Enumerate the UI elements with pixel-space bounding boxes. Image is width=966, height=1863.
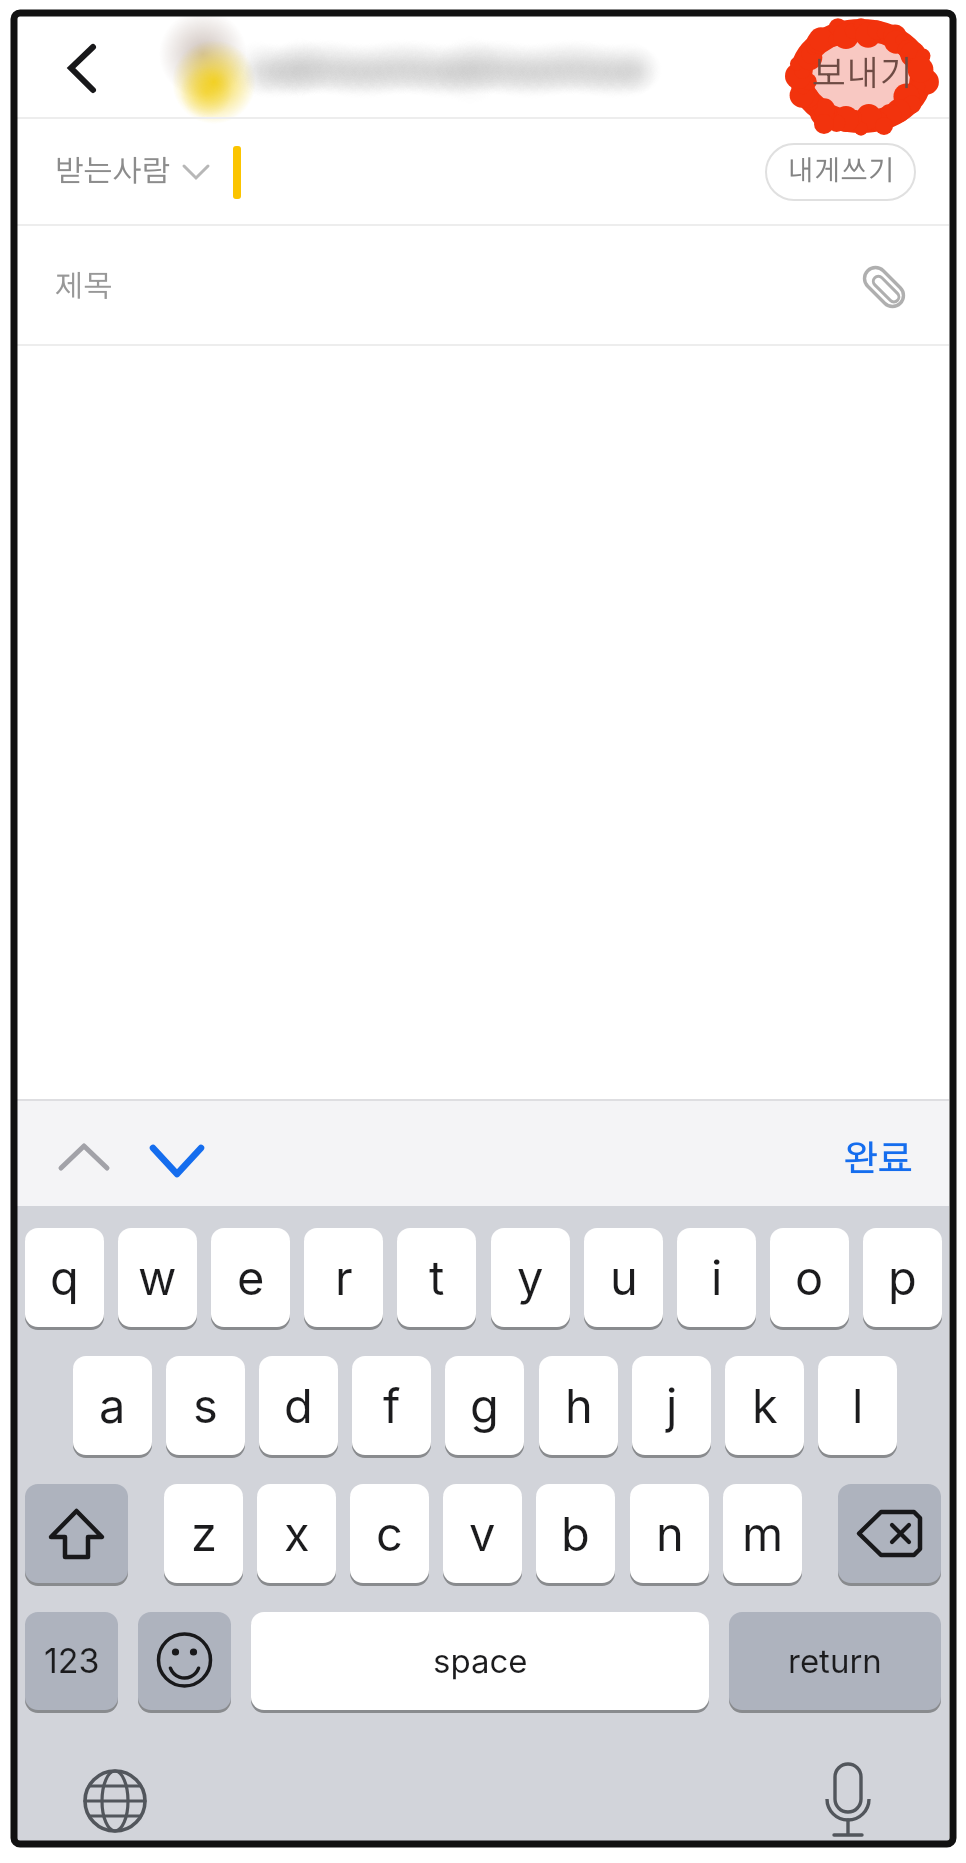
button[interactable]: v (443, 1484, 522, 1586)
button[interactable] (838, 1484, 941, 1586)
button[interactable]: o (770, 1228, 849, 1330)
staticText: n (656, 1505, 684, 1562)
button[interactable]: y (491, 1228, 570, 1330)
button[interactable]: h (539, 1356, 618, 1458)
button[interactable] (855, 258, 915, 318)
staticText: 받는사람 (55, 157, 171, 187)
button[interactable]: d (259, 1356, 338, 1458)
staticText: j (666, 1377, 678, 1434)
button[interactable]: s (166, 1356, 245, 1458)
button[interactable]: t (397, 1228, 476, 1330)
button[interactable]: j (632, 1356, 711, 1458)
staticText: 완료 (843, 1142, 914, 1178)
staticText: i (711, 1249, 723, 1306)
button[interactable]: 123 (25, 1612, 118, 1713)
staticText: l (852, 1377, 864, 1434)
button[interactable] (82, 1768, 148, 1834)
button[interactable]: space (251, 1612, 709, 1713)
button[interactable] (50, 35, 114, 101)
staticText: e (237, 1249, 265, 1306)
button[interactable] (140, 1132, 212, 1188)
button[interactable]: c (350, 1484, 429, 1586)
button[interactable]: r (304, 1228, 383, 1330)
button[interactable]: m (723, 1484, 802, 1586)
staticText: return (788, 1641, 882, 1681)
button[interactable]: 완료 (828, 1133, 928, 1187)
button[interactable]: l (818, 1356, 897, 1458)
button[interactable]: return (729, 1612, 941, 1713)
staticText: 123 (44, 1640, 100, 1681)
button[interactable] (25, 1484, 128, 1586)
staticText: r (335, 1249, 353, 1306)
button[interactable]: f (352, 1356, 431, 1458)
button[interactable] (48, 1132, 120, 1188)
staticText: h (565, 1377, 593, 1434)
button[interactable] (138, 1612, 231, 1713)
staticText: v (469, 1505, 496, 1562)
staticText: d (284, 1377, 313, 1434)
staticText: m (742, 1505, 784, 1562)
button[interactable]: n (630, 1484, 709, 1586)
button[interactable]: p (863, 1228, 942, 1330)
button[interactable] (820, 1760, 876, 1840)
button[interactable]: 보내기 (795, 45, 930, 103)
button[interactable]: x (257, 1484, 336, 1586)
staticText: o (795, 1249, 824, 1306)
staticText: k (752, 1377, 778, 1434)
staticText: x (284, 1505, 310, 1562)
staticText: y (517, 1249, 544, 1306)
staticText: t (429, 1249, 445, 1306)
staticText: b (561, 1505, 590, 1562)
button[interactable]: q (25, 1228, 104, 1330)
staticText: p (888, 1249, 917, 1306)
staticText: 내게쓰기 (787, 158, 895, 186)
button[interactable]: b (536, 1484, 615, 1586)
staticText: f (383, 1377, 401, 1434)
staticText: q (50, 1249, 79, 1306)
staticText: space (433, 1641, 528, 1681)
staticText: u (610, 1249, 638, 1306)
button[interactable]: 내게쓰기 (765, 143, 916, 201)
staticText: s (193, 1377, 218, 1434)
button[interactable]: a (73, 1356, 152, 1458)
button[interactable]: u (584, 1228, 663, 1330)
button[interactable]: w (118, 1228, 197, 1330)
button[interactable]: g (445, 1356, 524, 1458)
button[interactable]: z (164, 1484, 243, 1586)
button[interactable]: k (725, 1356, 804, 1458)
button[interactable]: e (211, 1228, 290, 1330)
staticText: a (99, 1377, 126, 1434)
staticText: c (376, 1505, 403, 1562)
staticText: 보내기 (812, 57, 913, 92)
staticText: 제목 (55, 272, 113, 302)
staticText: w (138, 1249, 177, 1306)
button[interactable]: i (677, 1228, 756, 1330)
staticText: z (191, 1505, 217, 1562)
staticText: g (470, 1377, 499, 1434)
